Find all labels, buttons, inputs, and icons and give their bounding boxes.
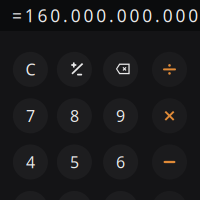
staticText: 6 bbox=[116, 151, 125, 173]
button[interactable]: Multiply bbox=[152, 98, 187, 133]
button[interactable]: 9 bbox=[103, 98, 138, 133]
staticText: =160.000.000.000 bbox=[12, 4, 198, 27]
button[interactable]: 8 bbox=[57, 98, 92, 133]
button[interactable]: Add bbox=[152, 191, 187, 200]
button[interactable]: 3 bbox=[103, 191, 138, 200]
button[interactable]: C bbox=[13, 52, 48, 87]
staticText: 7 bbox=[26, 105, 35, 126]
button[interactable]: Subtract bbox=[152, 144, 187, 179]
staticText: C bbox=[25, 59, 35, 80]
button[interactable]: Plus or minus bbox=[57, 52, 92, 87]
staticText: 8 bbox=[70, 105, 79, 126]
button[interactable]: 2 bbox=[57, 191, 92, 200]
button[interactable]: 4 bbox=[13, 144, 48, 179]
button[interactable]: Delete bbox=[103, 52, 138, 87]
staticText: 5 bbox=[70, 151, 79, 173]
button[interactable]: 7 bbox=[13, 98, 48, 133]
button[interactable]: 1 bbox=[13, 191, 48, 200]
button[interactable]: 5 bbox=[57, 144, 92, 179]
button[interactable]: 6 bbox=[103, 144, 138, 179]
button[interactable]: Divide bbox=[152, 52, 187, 87]
staticText: 4 bbox=[26, 151, 35, 173]
staticText: 9 bbox=[116, 105, 125, 126]
